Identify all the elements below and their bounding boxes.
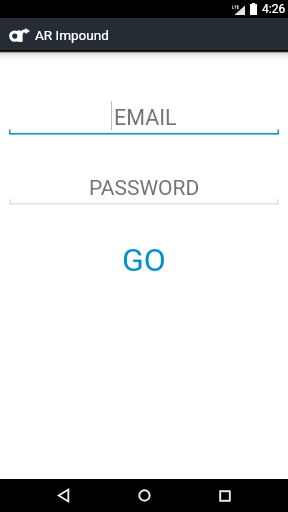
staticText: AR Impound <box>35 27 109 43</box>
staticText: GO <box>122 241 166 279</box>
staticText: PASSWORD <box>89 176 200 201</box>
button[interactable]: Recents <box>205 479 245 512</box>
button[interactable]: PASSWORD <box>0 168 288 206</box>
button[interactable]: Home <box>124 479 164 512</box>
staticText: EMAIL <box>114 105 177 130</box>
button[interactable]: Back <box>43 479 83 512</box>
staticText: 4:26 <box>262 2 286 16</box>
button[interactable]: EMAIL <box>0 96 288 136</box>
button[interactable]: GO <box>0 240 288 280</box>
